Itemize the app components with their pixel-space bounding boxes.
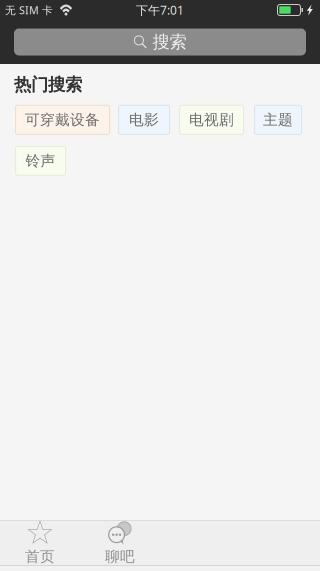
button[interactable]: 聊吧 (80, 521, 160, 565)
button[interactable]: 电影 (119, 105, 170, 134)
staticText: 电影 (129, 111, 159, 129)
button[interactable]: 搜索 (14, 28, 306, 55)
staticText: 搜索 (152, 31, 186, 53)
staticText: 铃声 (26, 152, 56, 170)
staticText: 电视剧 (189, 111, 234, 129)
button[interactable]: 主题 (255, 105, 302, 134)
button[interactable]: 电视剧 (180, 105, 244, 134)
staticText: 主题 (263, 111, 293, 129)
staticText: 可穿戴设备 (25, 111, 100, 129)
staticText: 无 SIM 卡 (5, 3, 53, 17)
staticText: 聊吧 (105, 547, 135, 565)
staticText: 下午7:01 (136, 2, 184, 18)
button[interactable]: 可穿戴设备 (16, 105, 110, 134)
button[interactable]: 首页 (0, 521, 80, 565)
button[interactable]: 铃声 (16, 146, 66, 175)
staticText: 热门搜索 (14, 74, 82, 95)
staticText: 首页 (25, 547, 55, 565)
